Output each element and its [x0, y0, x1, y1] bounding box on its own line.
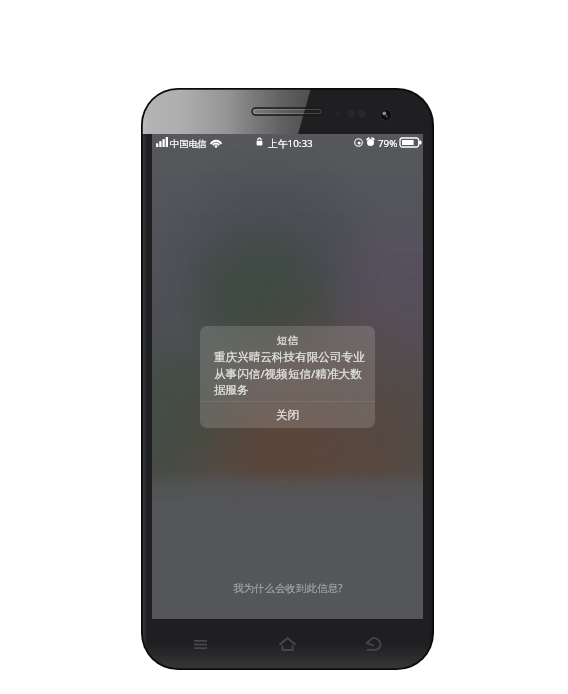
staticText: 关闭 [276, 408, 299, 422]
staticText: 上午10:33 [268, 137, 313, 150]
button[interactable]: Menu [179, 623, 221, 665]
staticText: 重庆兴晴云科技有限公司专业从事闪信/视频短信/精准大数据服务 [214, 350, 366, 398]
staticText: 79% [378, 137, 398, 150]
button[interactable]: 我为什么会收到此信息? [233, 581, 343, 595]
button[interactable]: 关闭 [200, 402, 375, 428]
button[interactable]: Home [266, 623, 308, 665]
staticText: 中国电信 [170, 138, 207, 150]
staticText: 短信 [200, 334, 375, 347]
button[interactable]: Back [353, 623, 395, 665]
staticText: 我为什么会收到此信息? [233, 581, 343, 595]
